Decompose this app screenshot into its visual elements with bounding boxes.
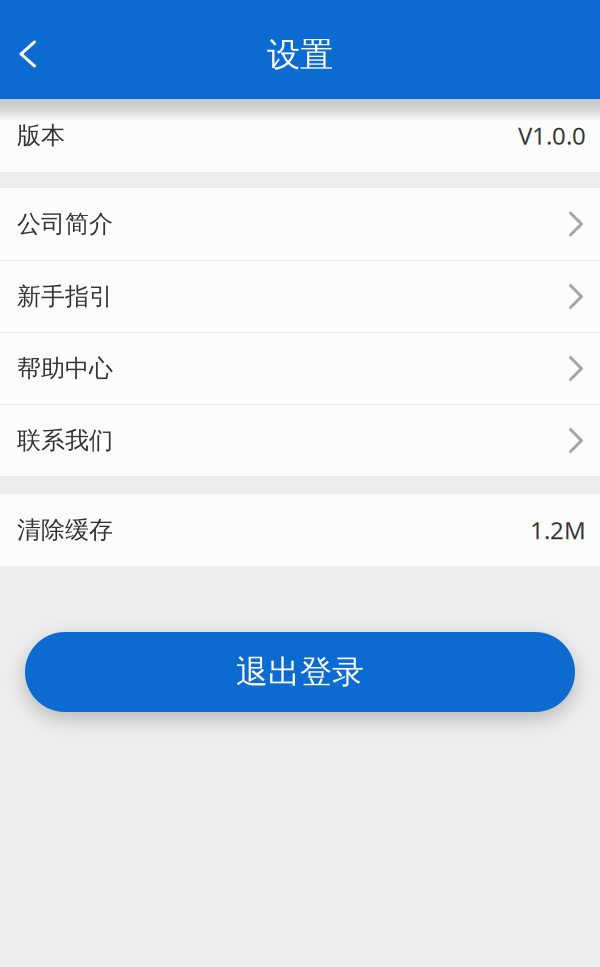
button[interactable]: 帮助中心	[0, 332, 600, 404]
staticText: 公司简介	[17, 209, 113, 239]
button[interactable]: 新手指引	[0, 260, 600, 332]
staticText: 联系我们	[17, 426, 113, 455]
staticText: V1.0.0	[518, 120, 586, 151]
button[interactable]: 联系我们	[0, 404, 600, 476]
staticText: 设置	[267, 34, 333, 75]
staticText: 1.2M	[530, 514, 586, 546]
staticText: 退出登录	[236, 652, 364, 692]
staticText: 新手指引	[17, 282, 113, 311]
staticText: 版本	[17, 121, 65, 150]
button[interactable]: 公司简介	[0, 188, 600, 260]
button[interactable]: 清除缓存	[0, 494, 600, 566]
staticText: 清除缓存	[17, 515, 113, 545]
button[interactable]: 版本	[0, 99, 600, 172]
staticText: 帮助中心	[17, 354, 113, 383]
button[interactable]: 退出登录	[25, 632, 575, 712]
button[interactable]: Back	[0, 31, 56, 79]
